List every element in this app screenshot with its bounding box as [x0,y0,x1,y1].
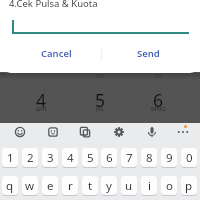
staticText: DEF [154,73,163,79]
staticText: 1 [7,150,14,166]
staticText: i [148,178,151,194]
staticText: Send [137,47,160,60]
button[interactable] [111,124,127,140]
button[interactable]: 5 [82,148,98,168]
staticText: o [166,178,173,194]
button[interactable]: 6 [101,148,117,168]
button[interactable]: 0 [181,148,197,168]
button[interactable] [175,124,191,140]
button[interactable] [45,124,61,140]
staticText: 4 [67,150,74,166]
staticText: 3 [47,150,54,166]
button[interactable]: 3 [42,148,58,168]
staticText: 4 [36,88,47,108]
staticText: GHI [36,105,47,113]
staticText: 9 [166,150,173,166]
button[interactable]: r [62,176,78,196]
staticText: 2 [27,150,34,166]
button[interactable]: 7 [121,148,137,168]
staticText: 8 [146,150,153,166]
button[interactable]: p [181,176,197,196]
button[interactable]: 4 [62,148,78,168]
button[interactable] [12,124,28,140]
staticText: 4.Cek Pulsa & Kuota [9,0,98,10]
button[interactable]: 8 [141,148,157,168]
staticText: Cancel [41,47,72,60]
staticText: p [185,178,193,194]
staticText: ABC [96,73,105,79]
staticText: 5 [87,150,94,166]
button[interactable]: i [141,176,157,196]
button[interactable]: o [161,176,177,196]
staticText: 5 [95,88,106,108]
staticText: 7 [126,150,133,166]
button[interactable]: q [2,176,18,196]
button[interactable] [144,124,160,140]
button[interactable] [77,124,93,140]
staticText: 6 [106,150,113,166]
staticText: 0 [186,150,193,166]
button[interactable]: 9 [161,148,177,168]
button[interactable]: e [42,176,58,196]
staticText: u [125,178,133,194]
button[interactable]: u [121,176,137,196]
staticText: JKL [96,105,105,113]
button[interactable]: Send [128,44,169,62]
button[interactable]: y [101,176,117,196]
staticText: e [47,178,54,194]
staticText: 6 [153,88,164,108]
staticText: q [6,178,14,194]
button[interactable]: 2 [22,148,38,168]
button[interactable]: t [82,176,98,196]
staticText: y [106,178,112,194]
staticText: r [68,178,73,194]
button[interactable]: 1 [2,148,18,168]
staticText: w [25,178,35,194]
staticText: t [88,178,93,194]
button[interactable]: w [22,176,38,196]
button[interactable]: Cancel [36,44,77,62]
staticText: MNO [151,105,166,113]
